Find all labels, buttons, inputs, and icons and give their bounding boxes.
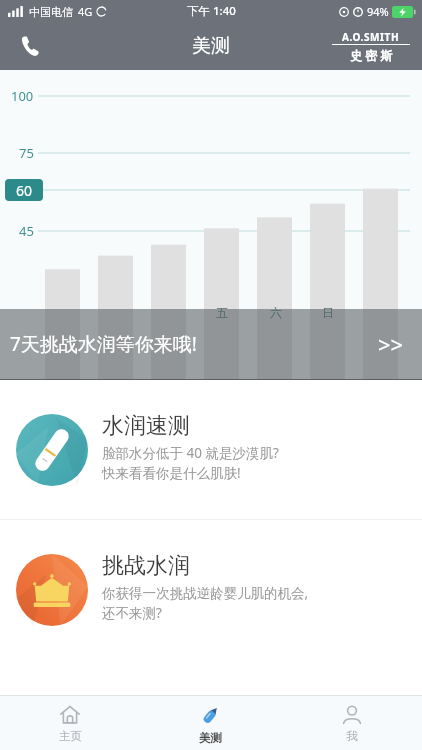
button[interactable]: 我 bbox=[281, 696, 422, 750]
staticText: 60 bbox=[16, 181, 33, 200]
button[interactable]: 挑战水润 bbox=[0, 520, 422, 659]
staticText: 中国电信 bbox=[29, 5, 73, 19]
staticText: 4G bbox=[78, 4, 93, 19]
staticText: 我 bbox=[346, 729, 358, 743]
staticText: 六 bbox=[270, 305, 282, 320]
button[interactable]: 美测 bbox=[140, 696, 281, 750]
staticText: 7天挑战水润等你来哦! bbox=[10, 331, 197, 357]
staticText: 脸部水分低于 40 就是沙漠肌? bbox=[102, 444, 279, 462]
staticText: 快来看看你是什么肌肤! bbox=[102, 464, 241, 482]
staticText: 挑战水润 bbox=[102, 552, 190, 580]
staticText: 75 bbox=[19, 144, 34, 162]
staticText: 美测 bbox=[192, 34, 230, 58]
staticText: >> bbox=[378, 329, 404, 359]
button[interactable]: 主页 bbox=[0, 696, 140, 750]
staticText: 主页 bbox=[59, 729, 82, 743]
staticText: 100 bbox=[11, 87, 34, 105]
staticText: 日 bbox=[322, 305, 334, 320]
staticText: 美测 bbox=[199, 731, 222, 745]
staticText: 水润速测 bbox=[102, 412, 190, 440]
staticText: 还不来测? bbox=[102, 604, 162, 622]
staticText: A.O.SMITH bbox=[342, 30, 400, 44]
staticText: 你获得一次挑战逆龄婴儿肌的机会, bbox=[102, 584, 309, 602]
button[interactable]: Call bbox=[14, 30, 46, 62]
staticText: 五 bbox=[216, 305, 228, 320]
staticText: 45 bbox=[19, 222, 34, 240]
button[interactable]: 水润速测 bbox=[0, 380, 422, 519]
staticText: 94% bbox=[367, 4, 389, 19]
button[interactable]: 7天挑战水润等你来哦! bbox=[0, 309, 422, 379]
staticText: 史 密 斯 bbox=[350, 47, 393, 63]
staticText: 下午 1:40 bbox=[187, 3, 236, 19]
